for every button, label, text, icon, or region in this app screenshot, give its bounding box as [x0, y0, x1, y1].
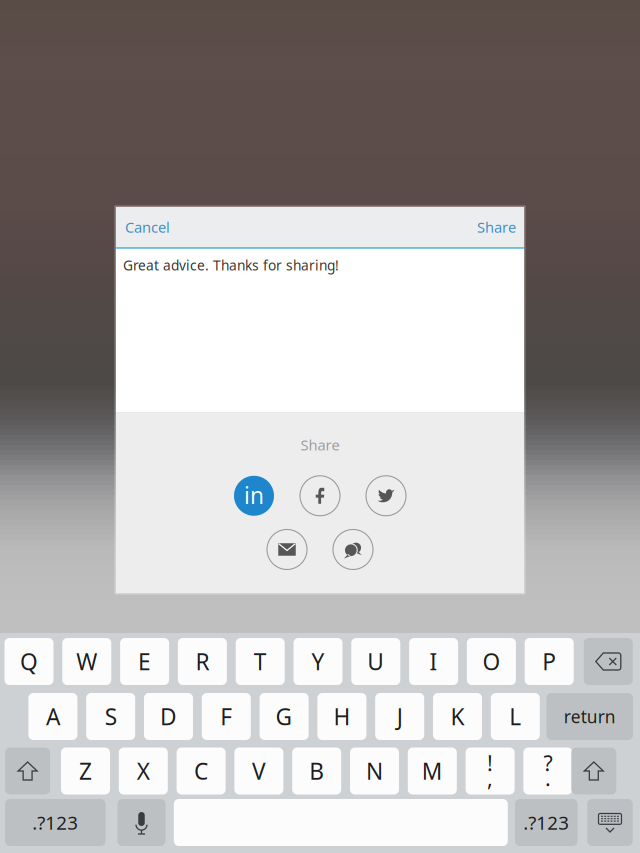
staticText: L	[509, 701, 521, 732]
staticText: D	[160, 701, 177, 732]
staticText: I	[430, 646, 438, 677]
staticText: M	[422, 756, 443, 786]
button[interactable]: Cancel	[116, 207, 184, 247]
staticText: B	[309, 756, 324, 786]
button[interactable]: Share by Email	[267, 529, 307, 569]
button[interactable]: A	[28, 693, 77, 740]
button[interactable]: Hide Keyboard	[587, 799, 633, 846]
button[interactable]: L	[491, 693, 540, 740]
staticText: in	[244, 480, 264, 511]
button[interactable]: Share on Facebook	[300, 476, 340, 516]
staticText: Great advice. Thanks for sharing!	[123, 256, 339, 274]
staticText: Share	[300, 435, 339, 455]
staticText: J	[397, 701, 403, 732]
button[interactable]: M	[408, 747, 457, 794]
staticText: U	[367, 646, 384, 677]
button[interactable]: Shift	[5, 747, 50, 794]
staticText: .?123	[32, 810, 78, 835]
staticText: F	[220, 701, 232, 732]
staticText: return	[564, 705, 616, 728]
staticText: .	[545, 763, 551, 793]
staticText: K	[450, 701, 464, 732]
staticText: Y	[311, 646, 324, 677]
button[interactable]: F	[202, 693, 251, 740]
staticText: N	[366, 756, 383, 786]
button[interactable]: K	[433, 693, 482, 740]
staticText: O	[482, 646, 500, 677]
button[interactable]: O	[467, 638, 516, 685]
staticText: ?	[543, 748, 552, 778]
button[interactable]: H	[317, 693, 366, 740]
button[interactable]: T	[236, 638, 285, 685]
staticText: Share	[477, 217, 516, 237]
staticText: T	[254, 646, 267, 677]
button[interactable]: Share on LinkedIn	[234, 476, 274, 516]
button[interactable]: return	[546, 693, 633, 740]
button[interactable]: .?123	[5, 799, 105, 846]
staticText: S	[105, 701, 117, 732]
staticText: P	[542, 646, 556, 677]
button[interactable]: G	[260, 693, 309, 740]
button[interactable]: D	[144, 693, 193, 740]
staticText: Q	[20, 646, 38, 677]
staticText: !	[487, 748, 493, 778]
staticText: .?123	[523, 810, 569, 835]
staticText: Z	[79, 756, 92, 786]
button[interactable]: B	[292, 747, 341, 794]
staticText: A	[46, 701, 60, 732]
button[interactable]: S	[86, 693, 135, 740]
button[interactable]: C	[177, 747, 226, 794]
staticText: G	[276, 701, 293, 732]
staticText: E	[138, 646, 151, 677]
button[interactable]: I	[409, 638, 458, 685]
staticText: W	[76, 646, 97, 677]
button[interactable]: Z	[61, 747, 110, 794]
button[interactable]: N	[350, 747, 399, 794]
button[interactable]: .?123	[515, 799, 577, 846]
staticText: X	[137, 756, 150, 786]
button[interactable]: E	[120, 638, 169, 685]
button[interactable]: Dictate	[117, 799, 165, 846]
button[interactable]: Share on Twitter	[366, 476, 406, 516]
button[interactable]: V	[234, 747, 283, 794]
button[interactable]: J	[375, 693, 424, 740]
button[interactable]: !	[466, 747, 515, 794]
staticText: C	[194, 756, 208, 786]
button[interactable]: Share by Message	[333, 529, 373, 569]
button[interactable]: ?	[523, 747, 572, 794]
button[interactable]: W	[62, 638, 111, 685]
staticText: H	[333, 701, 350, 732]
staticText: Cancel	[125, 217, 170, 237]
staticText: ,	[487, 763, 493, 793]
button[interactable]: Shift	[571, 747, 616, 794]
button[interactable]: Y	[293, 638, 342, 685]
button[interactable]: Share	[463, 207, 524, 247]
button[interactable]: Delete	[584, 638, 633, 685]
button[interactable]: R	[178, 638, 227, 685]
button[interactable]: P	[525, 638, 574, 685]
button[interactable]: X	[119, 747, 168, 794]
button[interactable]: U	[351, 638, 400, 685]
staticText: R	[195, 646, 209, 677]
button[interactable]: Q	[4, 638, 53, 685]
staticText: V	[252, 756, 266, 786]
